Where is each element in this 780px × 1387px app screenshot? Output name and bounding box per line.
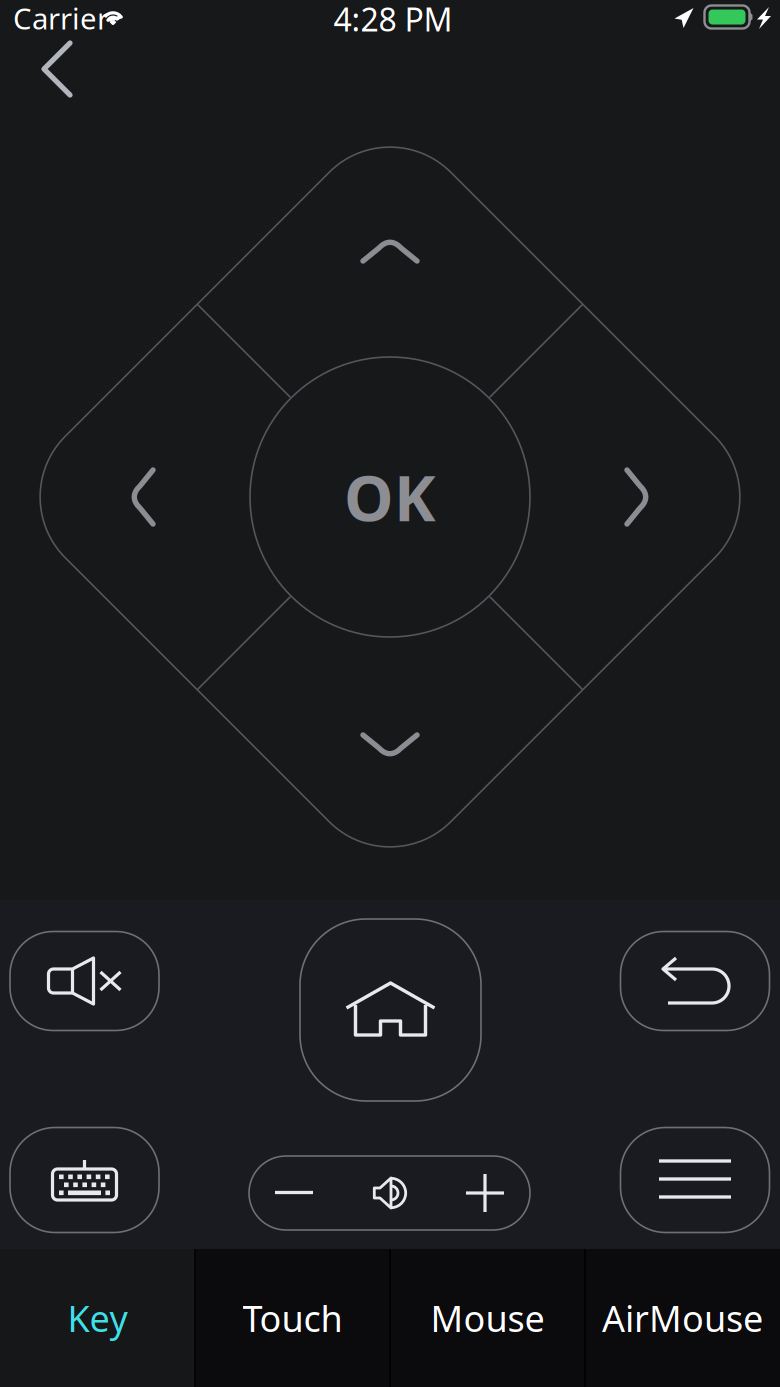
- staticText: Mouse: [430, 1294, 544, 1342]
- button[interactable]: Menu: [620, 1127, 769, 1232]
- button[interactable]: Key: [0, 1249, 195, 1387]
- staticText: Key: [67, 1294, 127, 1342]
- staticText: Carrier: [13, 0, 109, 37]
- button[interactable]: Mouse: [390, 1249, 585, 1387]
- button[interactable]: Keyboard: [10, 1127, 159, 1232]
- button[interactable]: Mute: [10, 931, 159, 1030]
- button[interactable]: Right: [0, 0, 780, 1387]
- staticText: OK: [344, 455, 436, 539]
- button[interactable]: Back: [620, 931, 769, 1030]
- button[interactable]: Down: [0, 0, 780, 1387]
- button[interactable]: Volume down: [254, 1156, 334, 1230]
- staticText: AirMouse: [602, 1294, 763, 1342]
- button[interactable]: Left: [0, 0, 780, 1387]
- button[interactable]: OK: [250, 357, 530, 637]
- button[interactable]: Touch: [195, 1249, 390, 1387]
- staticText: Touch: [242, 1294, 342, 1342]
- button[interactable]: Volume up: [445, 1156, 525, 1230]
- button[interactable]: Back: [14, 26, 100, 112]
- button[interactable]: Up: [0, 0, 780, 1387]
- button[interactable]: Home: [300, 919, 481, 1101]
- staticText: 4:28 PM: [333, 0, 452, 40]
- button[interactable]: AirMouse: [585, 1249, 780, 1387]
